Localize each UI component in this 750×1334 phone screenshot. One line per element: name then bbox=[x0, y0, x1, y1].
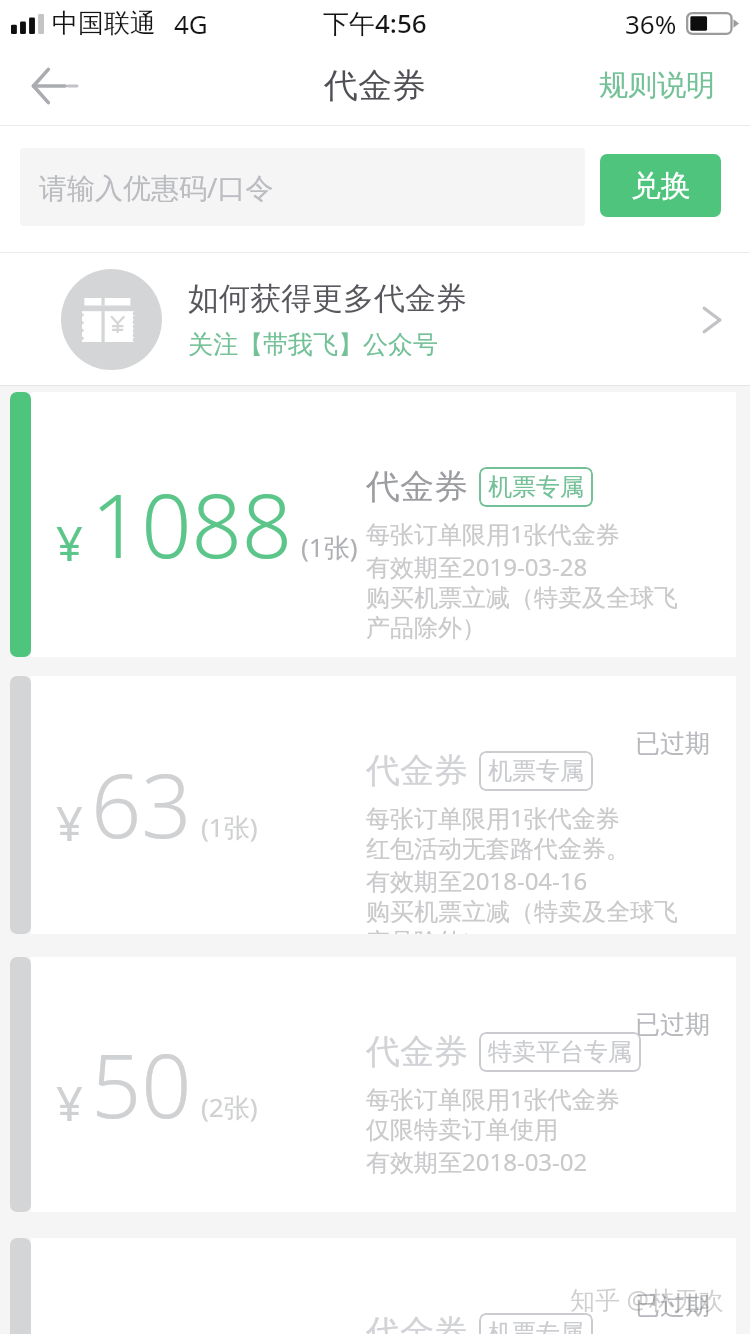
button[interactable]: 请输入优惠码/口令 bbox=[20, 148, 585, 226]
staticText: 已过期 bbox=[635, 1290, 710, 1321]
button[interactable]: ¥ bbox=[0, 392, 750, 657]
staticText: 产品除外） bbox=[366, 613, 486, 643]
staticText: (2张) bbox=[201, 1089, 258, 1125]
staticText: 已过期 bbox=[635, 728, 710, 759]
staticText: 购买机票立减（特卖及全球飞 bbox=[366, 583, 678, 613]
staticText: 红包活动无套路代金券。 bbox=[366, 834, 630, 864]
staticText: 有效期至2019-03-28 bbox=[366, 550, 588, 583]
staticText: 63 bbox=[91, 744, 192, 864]
staticText: 有效期至2018-03-02 bbox=[366, 1145, 588, 1178]
staticText: (1张) bbox=[301, 529, 358, 565]
staticText: 请输入优惠码/口令 bbox=[39, 168, 274, 206]
staticText: 有效期至2018-04-16 bbox=[366, 864, 588, 897]
staticText: 购买机票立减（特卖及全球飞 bbox=[366, 897, 678, 927]
staticText: ¥ bbox=[56, 511, 83, 575]
staticText: 每张订单限用1张代金券 bbox=[366, 1082, 620, 1115]
button[interactable]: ¥ bbox=[0, 1238, 750, 1334]
staticText: 产品除外） bbox=[366, 927, 486, 934]
staticText: 关注【带我飞】公众号 bbox=[188, 329, 438, 360]
staticText: 已过期 bbox=[635, 1009, 710, 1040]
staticText: ¥ bbox=[56, 1071, 83, 1135]
staticText: 每张订单限用1张代金券 bbox=[366, 801, 620, 834]
button[interactable]: 兑换 bbox=[600, 154, 721, 217]
staticText: 下午4:56 bbox=[323, 5, 427, 41]
button[interactable]: Back bbox=[0, 46, 108, 125]
staticText: 知乎 @林无欢 bbox=[570, 1282, 724, 1316]
staticText: 中国联通 bbox=[52, 7, 156, 40]
staticText: 机票专属 bbox=[488, 472, 584, 502]
staticText: 代金券 bbox=[366, 1030, 468, 1073]
button[interactable]: ¥ bbox=[0, 676, 750, 934]
button[interactable]: ¥ bbox=[0, 957, 750, 1212]
staticText: 50 bbox=[91, 1024, 192, 1144]
staticText: 代金券 bbox=[324, 64, 426, 107]
staticText: ¥ bbox=[56, 791, 83, 855]
staticText: 每张订单限用1张代金券 bbox=[366, 517, 620, 550]
staticText: 代金券 bbox=[366, 1311, 468, 1334]
staticText: 代金券 bbox=[366, 749, 468, 792]
staticText: 特卖平台专属 bbox=[488, 1037, 632, 1067]
staticText: 兑换 bbox=[631, 167, 691, 205]
staticText: 代金券 bbox=[366, 465, 468, 508]
button[interactable]: 如何获得更多代金券 bbox=[0, 253, 750, 385]
staticText: 1088 bbox=[91, 464, 292, 584]
staticText: 规则说明 bbox=[599, 67, 715, 104]
staticText: 机票专属 bbox=[488, 756, 584, 786]
staticText: 36% bbox=[625, 6, 677, 41]
staticText: 如何获得更多代金券 bbox=[188, 279, 467, 318]
staticText: 4G bbox=[174, 6, 208, 41]
staticText: (1张) bbox=[201, 809, 258, 845]
button[interactable]: 规则说明 bbox=[599, 46, 715, 125]
staticText: 仅限特卖订单使用 bbox=[366, 1115, 558, 1145]
staticText: 机票专属 bbox=[488, 1318, 584, 1334]
